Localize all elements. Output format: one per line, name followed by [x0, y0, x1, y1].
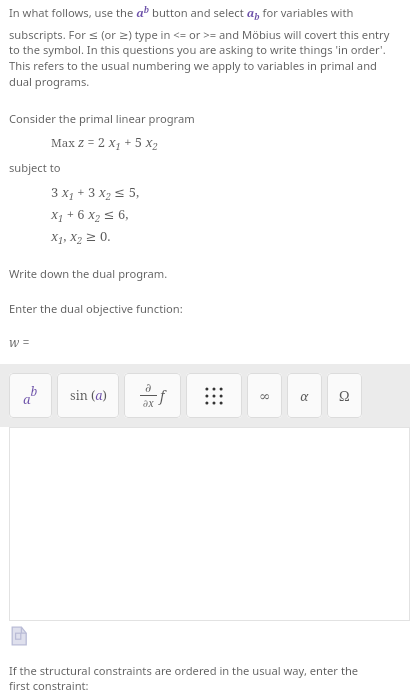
button[interactable]: Function	[57, 373, 119, 418]
staticText: If the structural constraints are ordere…	[9, 663, 359, 694]
staticText: ∂x	[143, 396, 154, 410]
button[interactable]	[9, 427, 410, 621]
staticText: ∞	[259, 388, 271, 404]
staticText: α	[300, 387, 309, 405]
staticText: w =	[9, 334, 30, 351]
button[interactable]: Infinity	[247, 373, 282, 418]
staticText: Consider the primal linear program	[9, 111, 195, 126]
staticText: Enter the dual objective function:	[9, 301, 183, 316]
button[interactable]: Superscript	[9, 373, 52, 418]
button[interactable]: Derivative	[124, 373, 181, 418]
staticText: x1 + 6 x2 ≤ 6,	[51, 205, 129, 224]
staticText: sin (a)	[70, 387, 107, 404]
button[interactable]: Attachment	[9, 626, 29, 646]
staticText: x1, x2 ≥ 0.	[51, 227, 111, 246]
button[interactable]: Matrix	[186, 373, 242, 418]
staticText: Write down the dual program.	[9, 266, 168, 281]
staticText: In what follows, use the ab button and s…	[9, 4, 398, 90]
staticText: Ω	[339, 386, 350, 405]
staticText: ab	[23, 383, 38, 408]
staticText: 3 x1 + 3 x2 ≤ 5,	[51, 183, 140, 202]
button[interactable]: Greek letters	[287, 373, 322, 418]
staticText: Max z = 2 x1 + 5 x2	[51, 133, 158, 152]
staticText: f	[160, 386, 165, 405]
staticText: ∂	[145, 381, 152, 395]
staticText: subject to	[9, 160, 61, 175]
button[interactable]: Symbols	[327, 373, 362, 418]
